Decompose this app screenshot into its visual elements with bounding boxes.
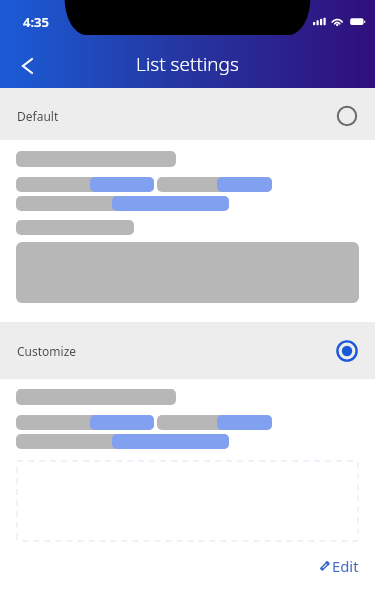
staticText: Customize [17,343,77,359]
staticText: List settings [0,51,375,77]
staticText: Edit [332,556,359,576]
button[interactable]: Customize [0,322,375,379]
button[interactable]: Edit [315,556,375,576]
staticText: Default [17,108,59,124]
button[interactable]: Default [0,88,375,140]
button[interactable]: Back [14,52,40,80]
staticText: 4:35 [23,13,49,31]
